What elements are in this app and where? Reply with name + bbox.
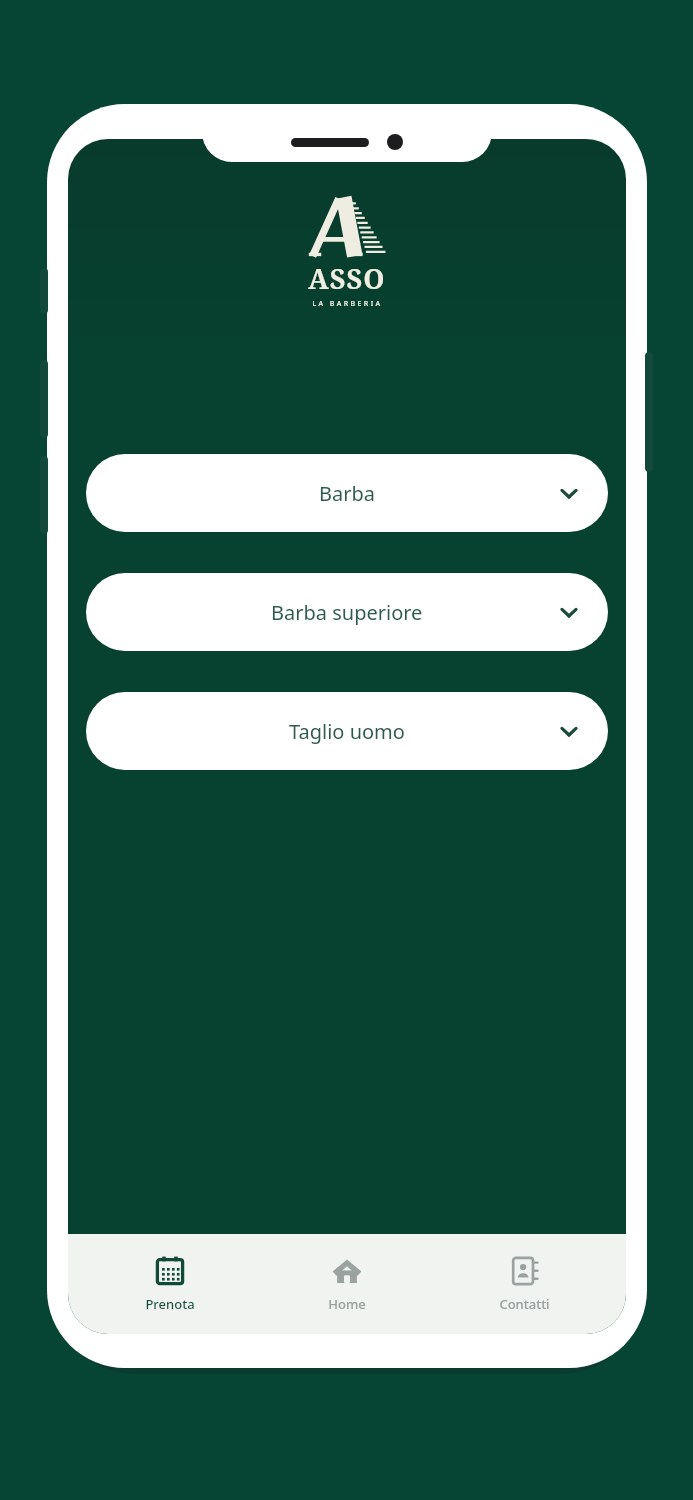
staticText: Barba	[319, 480, 375, 507]
button[interactable]: Home	[272, 1256, 422, 1313]
button[interactable]: Contatti	[449, 1256, 599, 1313]
button[interactable]: Prenota	[95, 1256, 245, 1313]
staticText: Barba superiore	[271, 599, 423, 626]
staticText: LA BARBERIA	[312, 299, 383, 309]
button[interactable]: Taglio uomo	[86, 692, 608, 770]
staticText: Contatti	[499, 1295, 550, 1313]
staticText: Prenota	[145, 1295, 195, 1313]
staticText: ASSO	[308, 260, 386, 297]
staticText: Taglio uomo	[289, 718, 405, 745]
button[interactable]: Barba	[86, 454, 608, 532]
button[interactable]: Barba superiore	[86, 573, 608, 651]
staticText: Home	[328, 1295, 366, 1313]
